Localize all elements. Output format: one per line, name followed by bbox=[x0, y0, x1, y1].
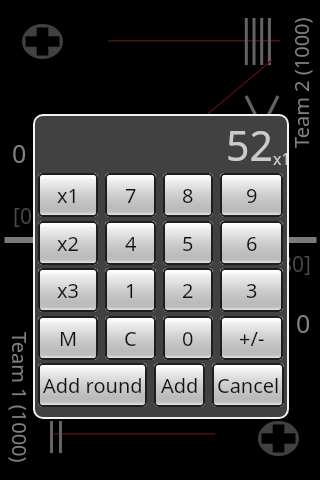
button[interactable]: 9 bbox=[220, 173, 283, 217]
button[interactable]: Add bbox=[154, 363, 205, 407]
button[interactable]: 5 bbox=[163, 221, 213, 265]
staticText: 4 bbox=[125, 230, 137, 257]
staticText: 0 bbox=[182, 325, 194, 352]
staticText: +/- bbox=[239, 325, 265, 352]
staticText: 0 bbox=[296, 306, 311, 340]
staticText: M bbox=[59, 325, 78, 352]
staticText: Add round bbox=[43, 372, 143, 399]
button[interactable]: Add score team 2 bbox=[258, 421, 299, 456]
button[interactable]: x1 bbox=[38, 173, 98, 217]
button[interactable]: M bbox=[38, 316, 98, 360]
staticText: 0 bbox=[12, 136, 27, 170]
staticText: 1 bbox=[125, 277, 137, 304]
staticText: Team 1 (1000) bbox=[6, 332, 33, 463]
staticText: x2 bbox=[57, 230, 80, 257]
staticText: C bbox=[124, 325, 137, 352]
staticText: [08 bbox=[13, 202, 44, 231]
button[interactable]: x3 bbox=[38, 268, 98, 312]
button[interactable]: 0 bbox=[163, 316, 213, 360]
staticText: 7 bbox=[125, 182, 137, 209]
staticText: Team 2 (1000) bbox=[288, 17, 315, 148]
staticText: 8 bbox=[182, 182, 194, 209]
staticText: Cancel bbox=[217, 372, 280, 399]
button[interactable]: 8 bbox=[163, 173, 213, 217]
staticText: 9 bbox=[246, 182, 258, 209]
button[interactable]: Cancel bbox=[212, 363, 284, 407]
button[interactable]: 1 bbox=[105, 268, 156, 312]
staticText: 80] bbox=[280, 250, 311, 279]
staticText: 2 bbox=[182, 277, 194, 304]
staticText: Add bbox=[161, 372, 199, 399]
button[interactable]: 7 bbox=[105, 173, 156, 217]
staticText: 52 bbox=[226, 117, 273, 173]
button[interactable]: C bbox=[105, 316, 156, 360]
button[interactable]: Add score team 1 bbox=[22, 24, 63, 59]
button[interactable]: Add round bbox=[38, 363, 147, 407]
button[interactable]: 3 bbox=[220, 268, 283, 312]
button[interactable]: 2 bbox=[163, 268, 213, 312]
staticText: x1 bbox=[273, 148, 287, 170]
button[interactable]: 4 bbox=[105, 221, 156, 265]
button[interactable]: 6 bbox=[220, 221, 283, 265]
staticText: x1 bbox=[57, 182, 80, 209]
button[interactable]: x2 bbox=[38, 221, 98, 265]
staticText: 5 bbox=[182, 230, 194, 257]
staticText: x3 bbox=[57, 277, 80, 304]
staticText: 6 bbox=[246, 230, 258, 257]
button[interactable]: +/- bbox=[220, 316, 283, 360]
staticText: 3 bbox=[246, 277, 258, 304]
